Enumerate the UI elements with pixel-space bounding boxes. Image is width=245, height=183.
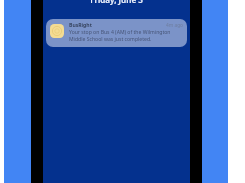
staticText: Friday, June 3	[43, 0, 190, 5]
staticText: 4m ago	[166, 22, 184, 29]
staticText: Your stop on Bus 4 (AM) of the Wilmingto…	[69, 29, 182, 42]
other: BusRight app icon	[50, 24, 64, 38]
button[interactable]: BusRight app icon	[46, 19, 187, 47]
staticText: BusRight	[69, 22, 92, 29]
